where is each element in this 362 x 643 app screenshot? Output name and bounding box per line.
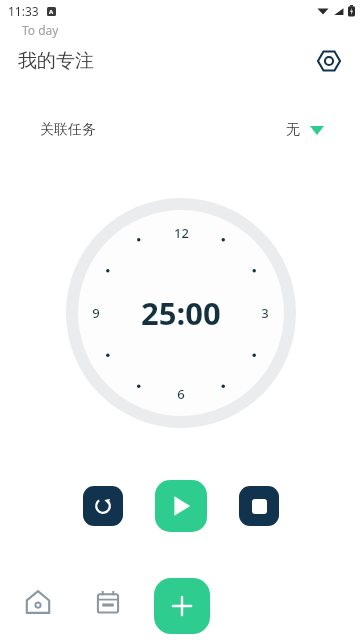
button[interactable]: Add xyxy=(154,578,210,634)
staticText: 3 xyxy=(261,304,269,322)
button[interactable]: Stop xyxy=(239,486,279,526)
staticText: 11:33 xyxy=(8,3,39,19)
staticText: To day xyxy=(22,22,59,38)
button[interactable]: Start xyxy=(155,480,207,532)
staticText: 6 xyxy=(177,385,185,403)
button[interactable]: Reset xyxy=(83,486,123,526)
staticText: 关联任务 xyxy=(40,121,96,139)
button[interactable]: Calendar xyxy=(83,577,133,627)
staticText: 9 xyxy=(92,304,100,322)
button[interactable]: Settings xyxy=(310,42,348,80)
staticText: 25:00 xyxy=(141,292,221,334)
button[interactable]: 关联任务 xyxy=(22,109,340,151)
staticText: 无 xyxy=(286,121,300,139)
staticText: 我的专注 xyxy=(18,49,94,73)
staticText: A xyxy=(49,8,54,16)
button[interactable]: Home xyxy=(13,577,63,627)
staticText: 12 xyxy=(174,224,189,242)
